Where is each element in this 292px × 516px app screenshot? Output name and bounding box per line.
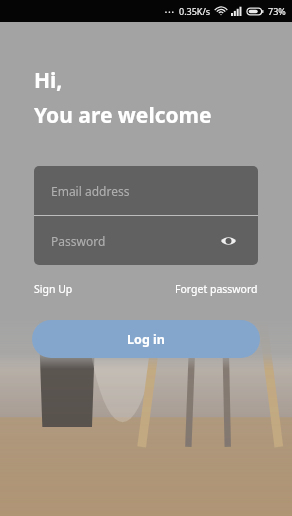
staticText: Sign Up xyxy=(34,282,73,296)
staticText: 0.35K/s xyxy=(179,5,211,17)
button[interactable]: Email address xyxy=(34,166,258,215)
staticText: You are welcome xyxy=(34,101,212,130)
button[interactable]: Sign Up xyxy=(34,279,73,299)
staticText: Password xyxy=(51,233,106,249)
staticText: 73% xyxy=(268,5,286,17)
staticText: Log in xyxy=(127,331,165,348)
button[interactable]: Show password xyxy=(215,228,241,254)
staticText: Hi, xyxy=(34,66,63,95)
button[interactable]: Log in xyxy=(32,320,260,358)
staticText: Email address xyxy=(51,183,130,199)
button[interactable]: Forget password xyxy=(175,279,258,299)
staticText: Forget password xyxy=(175,282,258,296)
button[interactable]: Password xyxy=(34,216,258,265)
